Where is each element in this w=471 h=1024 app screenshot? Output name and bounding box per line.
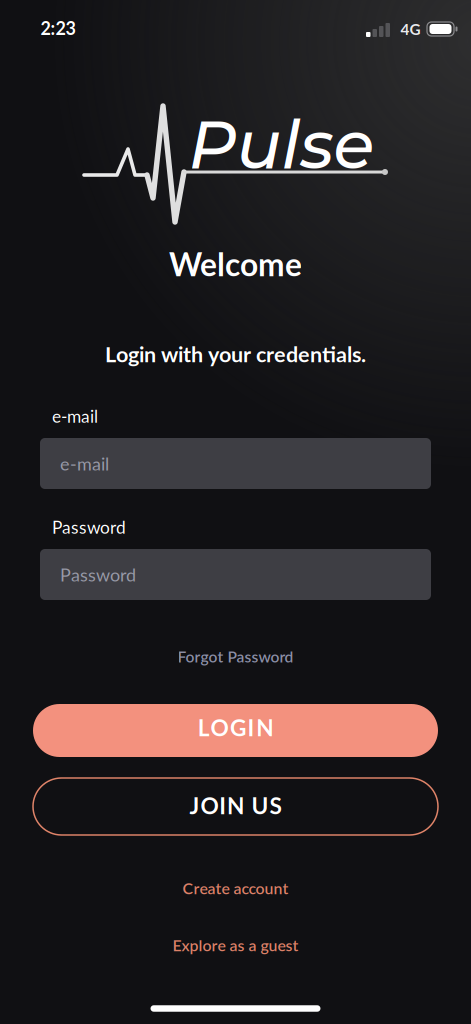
button[interactable]: LOGIN bbox=[33, 704, 438, 757]
button[interactable]: Explore as a guest bbox=[172, 935, 298, 954]
staticText: e-mail bbox=[52, 406, 98, 426]
staticText: 4G bbox=[400, 20, 420, 38]
staticText: Create account bbox=[182, 878, 288, 897]
staticText: Explore as a guest bbox=[172, 935, 298, 954]
staticText: Password bbox=[52, 517, 126, 537]
staticText: Login with your credentials. bbox=[105, 341, 366, 367]
staticText: Pulse bbox=[188, 104, 374, 185]
button[interactable]: Forgot Password bbox=[177, 647, 293, 666]
button[interactable]: Password bbox=[40, 549, 431, 600]
staticText: JOIN US bbox=[190, 792, 281, 819]
staticText: e-mail bbox=[60, 453, 109, 474]
button[interactable]: JOIN US bbox=[33, 778, 438, 835]
button[interactable]: e-mail bbox=[40, 438, 431, 489]
staticText: 2:23 bbox=[40, 17, 75, 39]
button[interactable]: Create account bbox=[182, 878, 288, 897]
staticText: Welcome bbox=[169, 245, 302, 283]
staticText: LOGIN bbox=[198, 714, 273, 741]
staticText: Forgot Password bbox=[177, 647, 293, 666]
staticText: Password bbox=[60, 564, 136, 585]
